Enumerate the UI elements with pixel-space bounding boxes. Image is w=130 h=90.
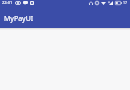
staticText: 22:01: [2, 0, 13, 5]
staticText: 17: [123, 0, 128, 5]
staticText: MyPayUI: [4, 14, 34, 24]
